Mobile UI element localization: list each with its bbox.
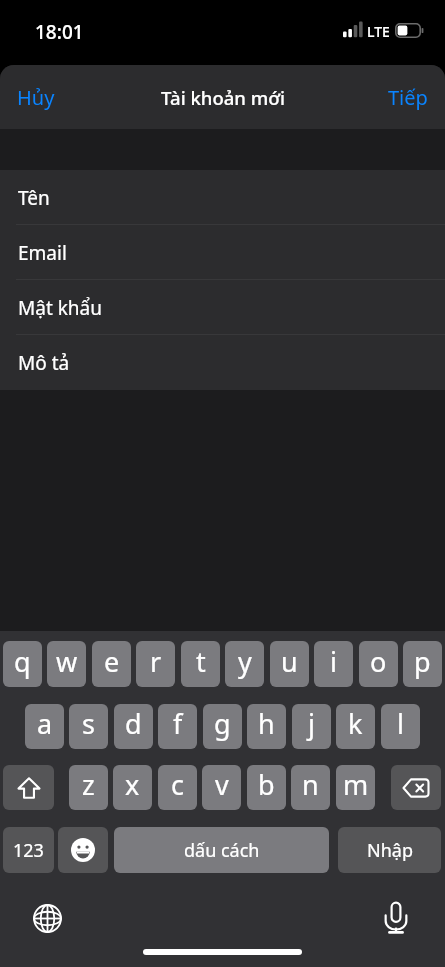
button[interactable]: e <box>92 641 131 687</box>
button[interactable]: f <box>158 704 197 749</box>
staticText: Tiếp <box>388 84 428 111</box>
button[interactable]: t <box>181 641 220 687</box>
button[interactable]: Emoji <box>58 827 108 873</box>
staticText: Tài khoản mới <box>161 85 285 110</box>
staticText: x <box>125 766 140 803</box>
staticText: Mật khẩu <box>18 295 102 321</box>
staticText: j <box>308 705 315 742</box>
button[interactable]: u <box>270 641 309 687</box>
button[interactable]: w <box>47 641 86 687</box>
button[interactable]: x <box>113 765 152 810</box>
staticText: Nhập <box>367 838 413 863</box>
staticText: Email <box>18 240 67 266</box>
staticText: m <box>343 766 369 803</box>
button[interactable]: Mật khẩu <box>0 280 445 335</box>
button[interactable]: b <box>247 765 286 810</box>
button[interactable]: 123 <box>3 827 54 873</box>
staticText: t <box>196 643 206 680</box>
button[interactable]: Shift <box>3 765 54 810</box>
button[interactable]: Email <box>0 225 445 280</box>
staticText: b <box>258 766 275 803</box>
staticText: Tên <box>18 185 50 211</box>
button[interactable]: Tên <box>0 170 445 225</box>
staticText: l <box>397 705 404 742</box>
staticText: c <box>171 766 184 803</box>
button[interactable]: a <box>25 704 64 749</box>
staticText: d <box>125 705 142 742</box>
staticText: e <box>104 643 120 680</box>
staticText: y <box>238 643 252 680</box>
staticText: w <box>56 643 78 680</box>
button[interactable]: p <box>403 641 442 687</box>
staticText: h <box>258 705 275 742</box>
button[interactable]: i <box>314 641 353 687</box>
button[interactable]: h <box>247 704 286 749</box>
staticText: z <box>82 766 95 803</box>
staticText: Mô tả <box>18 350 70 376</box>
button[interactable]: o <box>359 641 398 687</box>
staticText: q <box>14 643 31 680</box>
button[interactable]: Mô tả <box>0 335 445 390</box>
staticText: o <box>370 643 387 680</box>
staticText: LTE <box>367 22 390 41</box>
button[interactable]: m <box>336 765 375 810</box>
button[interactable]: Change keyboard <box>27 898 67 938</box>
button[interactable]: d <box>114 704 153 749</box>
button[interactable]: r <box>136 641 175 687</box>
button[interactable]: q <box>3 641 42 687</box>
staticText: dấu cách <box>184 838 260 863</box>
button[interactable]: s <box>69 704 108 749</box>
staticText: v <box>215 766 229 803</box>
staticText: r <box>150 643 162 680</box>
staticText: g <box>214 705 231 742</box>
button[interactable]: v <box>202 765 241 810</box>
button[interactable]: z <box>69 765 108 810</box>
staticText: i <box>330 643 337 680</box>
staticText: k <box>348 705 363 742</box>
staticText: a <box>37 705 53 742</box>
button[interactable]: dấu cách <box>114 827 329 873</box>
button[interactable]: Tiếp <box>371 74 445 121</box>
button[interactable]: Backspace <box>391 765 441 810</box>
staticText: u <box>281 643 298 680</box>
button[interactable]: Nhập <box>338 827 441 873</box>
button[interactable]: j <box>292 704 331 749</box>
button[interactable]: Dictation <box>376 898 416 938</box>
button[interactable]: y <box>225 641 264 687</box>
button[interactable]: g <box>203 704 242 749</box>
staticText: Hủy <box>17 84 55 111</box>
button[interactable]: l <box>381 704 420 749</box>
staticText: n <box>302 766 319 803</box>
staticText: s <box>82 705 95 742</box>
button[interactable]: k <box>336 704 375 749</box>
button[interactable]: n <box>291 765 330 810</box>
staticText: 18:01 <box>35 19 84 45</box>
staticText: 123 <box>13 838 44 863</box>
staticText: p <box>414 643 431 680</box>
button[interactable]: Hủy <box>0 74 72 121</box>
staticText: f <box>173 705 183 742</box>
button[interactable]: c <box>158 765 197 810</box>
